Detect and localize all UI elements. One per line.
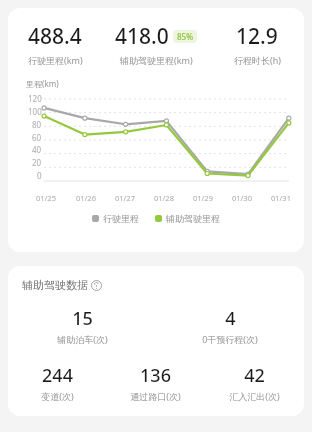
- staticText: 40: [32, 144, 42, 155]
- staticText: 42: [244, 363, 265, 388]
- button[interactable]: Help: [91, 280, 102, 291]
- staticText: 418.0: [115, 22, 169, 51]
- staticText: 变道(次): [41, 390, 74, 402]
- staticText: 行程时长(h): [234, 54, 281, 66]
- staticText: 辅助泊车(次): [57, 333, 108, 345]
- staticText: 01/30: [232, 193, 252, 203]
- staticText: 244: [42, 363, 73, 388]
- staticText: 100: [28, 106, 42, 117]
- staticText: 85%: [177, 31, 193, 42]
- staticText: 01/29: [193, 193, 213, 203]
- staticText: 60: [32, 132, 42, 143]
- staticText: 01/28: [154, 193, 174, 203]
- staticText: 120: [28, 93, 42, 104]
- staticText: 0干预行程(次): [202, 333, 258, 345]
- button[interactable]: 15: [8, 306, 156, 345]
- staticText: 4: [225, 306, 236, 331]
- button[interactable]: 418.0: [102, 22, 210, 66]
- staticText: 里程(km): [26, 78, 59, 89]
- staticText: 12.9: [236, 22, 278, 51]
- staticText: 通过路口(次): [130, 390, 181, 402]
- staticText: 0: [37, 170, 42, 181]
- button[interactable]: 12.9: [210, 22, 304, 66]
- staticText: 20: [32, 157, 42, 168]
- staticText: 01/27: [115, 193, 135, 203]
- staticText: 汇入汇出(次): [229, 390, 280, 402]
- staticText: 行驶里程: [103, 213, 139, 224]
- button[interactable]: 42: [205, 363, 304, 402]
- button[interactable]: 488.4: [8, 22, 102, 66]
- staticText: 01/25: [36, 193, 56, 203]
- staticText: 488.4: [28, 22, 82, 51]
- staticText: 辅助驾驶数据: [22, 278, 88, 292]
- button[interactable]: 4: [156, 306, 304, 345]
- staticText: 行驶里程(km): [28, 54, 83, 66]
- button[interactable]: 136: [106, 363, 205, 402]
- button[interactable]: 辅助驾驶里程: [155, 213, 220, 224]
- staticText: 辅助驾驶里程: [166, 213, 220, 224]
- button[interactable]: 行驶里程: [92, 213, 139, 224]
- staticText: 136: [140, 363, 171, 388]
- staticText: 15: [72, 306, 93, 331]
- button[interactable]: 244: [8, 363, 106, 402]
- button[interactable]: 辅助驾驶数据: [22, 278, 102, 292]
- staticText: 01/26: [76, 193, 96, 203]
- staticText: 80: [32, 119, 42, 130]
- staticText: 辅助驾驶里程(km): [120, 54, 193, 66]
- staticText: 01/31: [271, 193, 291, 203]
